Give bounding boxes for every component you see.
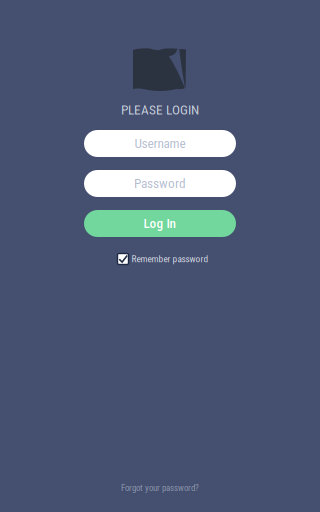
staticText: Log In	[143, 216, 176, 231]
staticText: Forgot your password?	[121, 483, 199, 493]
button[interactable]: Forgot your password?	[121, 482, 199, 494]
button[interactable]: Log In	[84, 210, 236, 237]
staticText: Username	[134, 136, 185, 151]
button[interactable]: Remember password	[111, 253, 208, 265]
button[interactable]: Username	[84, 130, 236, 157]
staticText: Password	[134, 176, 186, 191]
button[interactable]: Password	[84, 170, 236, 197]
staticText: Remember password	[131, 253, 208, 264]
staticText: PLEASE LOGIN	[121, 102, 199, 118]
